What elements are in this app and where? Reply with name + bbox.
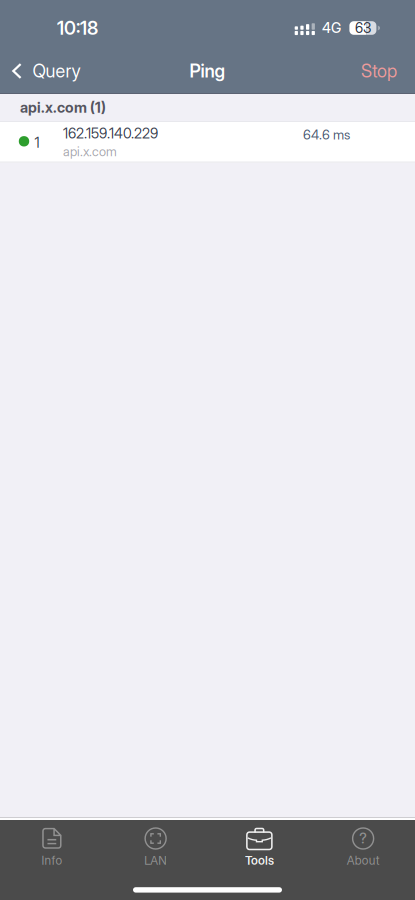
- button[interactable]: Info: [0, 820, 104, 871]
- staticText: ?: [359, 830, 367, 847]
- staticText: Tools: [245, 853, 274, 867]
- staticText: api.x.com (1): [20, 99, 106, 116]
- button[interactable]: LAN: [104, 820, 208, 871]
- button[interactable]: Query: [0, 49, 90, 93]
- staticText: 1: [34, 134, 39, 151]
- staticText: 10:18: [57, 17, 98, 39]
- staticText: LAN: [144, 853, 167, 867]
- staticText: Query: [32, 60, 80, 82]
- staticText: 63: [355, 19, 371, 36]
- staticText: 162.159.140.229: [63, 125, 158, 142]
- button[interactable]: Stop: [345, 49, 415, 93]
- button[interactable]: Tools: [207, 820, 311, 871]
- staticText: About: [347, 853, 380, 867]
- staticText: 4G: [322, 19, 341, 36]
- staticText: 64.6 ms: [303, 127, 350, 143]
- button[interactable]: 1: [0, 121, 415, 162]
- staticText: Stop: [361, 60, 397, 82]
- staticText: Info: [41, 853, 62, 867]
- staticText: api.x.com: [63, 144, 117, 159]
- button[interactable]: ?: [311, 820, 415, 871]
- staticText: Ping: [189, 60, 225, 82]
